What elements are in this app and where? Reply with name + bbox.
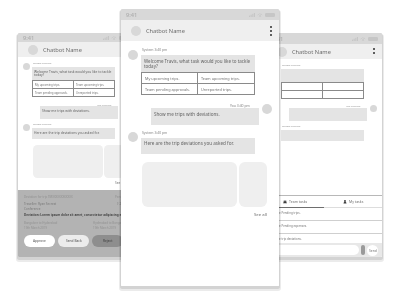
staticText: Here are the trip deviations you asked f… — [144, 140, 234, 146]
button[interactable]: Here are the trip deviations you asked f… — [141, 138, 255, 154]
button[interactable]: Send Back — [58, 235, 89, 247]
staticText: Show me trips with deviations. — [154, 111, 220, 117]
button[interactable]: More options — [117, 42, 133, 57]
button[interactable]: Team upcoming trips. — [198, 73, 254, 83]
button[interactable]: Initiate Pending trips. — [267, 208, 382, 220]
staticText: Approve — [33, 239, 46, 243]
staticText: Send — [369, 248, 377, 253]
staticText: Welcome Travis, what task would you like… — [34, 69, 113, 77]
button[interactable]: Welcome Travis, what task would you like… — [141, 55, 255, 72]
staticText: System 3:40 pm — [282, 63, 301, 66]
staticText: System 3:40 pm — [142, 130, 168, 135]
button[interactable]: Unreported trips. — [198, 84, 254, 94]
button[interactable]: More options — [366, 44, 382, 59]
staticText: Welcome Travis, what task would you like… — [144, 58, 252, 70]
button[interactable]: Send — [367, 245, 378, 256]
staticText: My upcoming trips. — [145, 76, 180, 81]
staticText: System 3:40 pm — [282, 124, 301, 127]
staticText: My upcoming trips. — [35, 83, 61, 87]
button[interactable]: Show me trips with deviations. — [151, 108, 259, 125]
staticText: 9:41 — [126, 11, 138, 19]
staticText: 9:41 — [23, 34, 35, 42]
staticText: Unreported trips. — [76, 91, 99, 95]
staticText: Send Back — [66, 239, 82, 243]
staticText: Initiate Pending trips. — [271, 211, 301, 215]
button[interactable]: My tasks — [324, 196, 382, 207]
button[interactable]: Show me trips with deviations. — [40, 106, 118, 119]
staticText: Deviation for trip TMXXXXXXXXXXXX — [24, 195, 115, 199]
staticText: Reject — [103, 239, 113, 243]
button[interactable]: Reject — [92, 235, 123, 247]
staticText: Bangalore to Hyderabad 19th March 2019 — [24, 221, 93, 230]
staticText: Chatbot Name — [146, 27, 185, 35]
staticText: Unreported trips. — [201, 87, 232, 92]
button[interactable]: Team upcoming trips. — [74, 81, 114, 88]
button[interactable]: Team pending approvals. — [33, 89, 73, 96]
button[interactable]: Team tasks — [267, 196, 324, 207]
staticText: Initiate Pending expenses. — [271, 224, 308, 228]
staticText: ₹ 2400 — [117, 202, 127, 206]
staticText: Show me trips with deviations. — [42, 108, 90, 113]
staticText: Here are the trip deviations you asked f… — [34, 130, 100, 135]
staticText: You 3:40 pm — [97, 103, 112, 106]
staticText: System 3:40 pm — [33, 122, 52, 125]
button[interactable]: Initiate trip deviations. — [267, 234, 382, 243]
button[interactable]: My upcoming trips. — [33, 81, 73, 88]
staticText: System 3:40 pm — [142, 47, 168, 52]
button[interactable]: Initiate Pending expenses. — [267, 221, 382, 233]
staticText: Team tasks — [289, 199, 308, 204]
staticText: Traveller: Ryan Secrest Conference — [24, 202, 117, 210]
staticText: 9:41 — [272, 35, 284, 43]
button[interactable]: Voice input — [361, 245, 365, 255]
staticText: Chatbot Name — [43, 46, 82, 54]
button[interactable]: Team pending approvals. — [142, 84, 197, 94]
staticText: Initiate trip deviations. — [271, 237, 302, 241]
button[interactable]: My upcoming trips. — [142, 73, 197, 83]
staticText: Team pending approvals. — [35, 91, 68, 95]
staticText: You 3:40 pm — [346, 104, 361, 107]
staticText: Chatbot Name — [292, 48, 331, 56]
button[interactable]: Welcome Travis, what task would you like… — [32, 67, 115, 80]
staticText: You 3:40 pm — [230, 103, 250, 108]
staticText: Team pending approvals. — [145, 87, 190, 92]
staticText: Hyderabad to Bangalore 19th March 2019 — [93, 221, 127, 230]
staticText: Team upcoming trips. — [201, 76, 240, 81]
button[interactable]: Unreported trips. — [74, 89, 114, 96]
button[interactable]: See all — [115, 181, 125, 185]
staticText: Deviation: Lorem ipsum dolor sit amet, c… — [24, 213, 125, 217]
button[interactable]: Here are the trip deviations you asked f… — [32, 128, 115, 139]
button[interactable]: See all — [254, 211, 267, 217]
button[interactable] — [271, 245, 359, 255]
staticText: System 3:40 pm — [33, 61, 52, 64]
staticText: My tasks — [349, 199, 364, 204]
button[interactable] — [104, 145, 124, 178]
button[interactable]: Approve — [24, 235, 55, 247]
button[interactable]: More options — [263, 22, 279, 40]
staticText: Pending — [115, 195, 127, 199]
staticText: Team upcoming trips. — [76, 83, 105, 87]
